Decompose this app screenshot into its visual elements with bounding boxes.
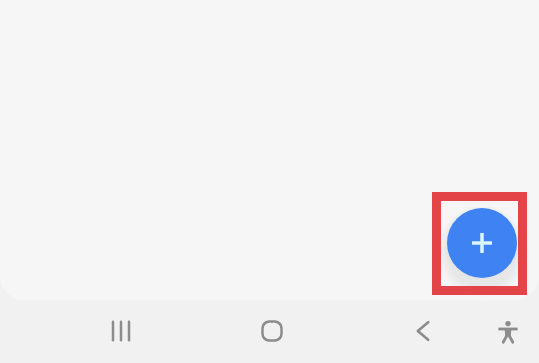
button[interactable]: Add [447, 208, 517, 278]
button[interactable]: Recent apps [97, 307, 145, 355]
button[interactable]: Accessibility [484, 308, 532, 356]
button[interactable]: Back [399, 307, 447, 355]
button[interactable]: Home [248, 307, 296, 355]
